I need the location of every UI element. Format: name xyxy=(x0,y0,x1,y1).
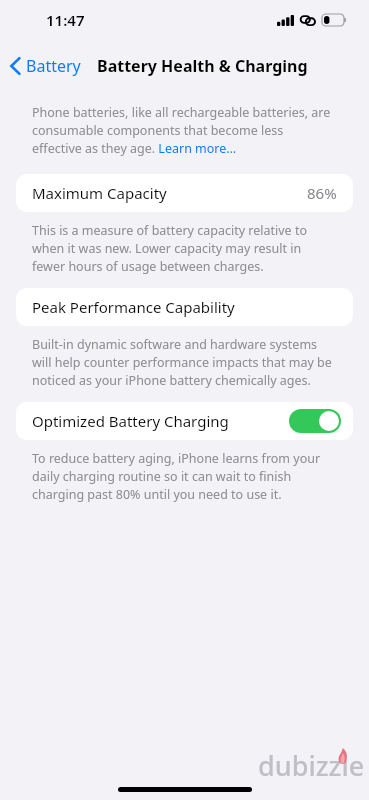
staticText: Battery Health & Charging xyxy=(97,55,308,77)
staticText: Maximum Capacity xyxy=(32,183,167,203)
staticText: Built-in dynamic software and hardware s… xyxy=(32,336,335,389)
staticText: 86% xyxy=(307,183,337,203)
button[interactable]: Optimized Battery Charging toggle, on xyxy=(289,409,341,433)
staticText: This is a measure of battery capacity re… xyxy=(32,222,335,275)
button[interactable]: Peak Performance Capability xyxy=(16,288,353,326)
staticText: To reduce battery aging, iPhone learns f… xyxy=(32,450,335,503)
staticText: 11:47 xyxy=(46,10,85,30)
staticText: Peak Performance Capability xyxy=(32,297,235,317)
staticText: Battery xyxy=(26,55,81,77)
button[interactable]: Maximum Capacity xyxy=(16,174,353,212)
staticText: dubizzle xyxy=(258,747,365,784)
staticText: Phone batteries, like all rechargeable b… xyxy=(32,104,335,157)
button[interactable]: Optimized Battery Charging xyxy=(16,402,353,440)
button[interactable]: Battery xyxy=(0,49,87,83)
staticText: Optimized Battery Charging xyxy=(32,411,229,431)
